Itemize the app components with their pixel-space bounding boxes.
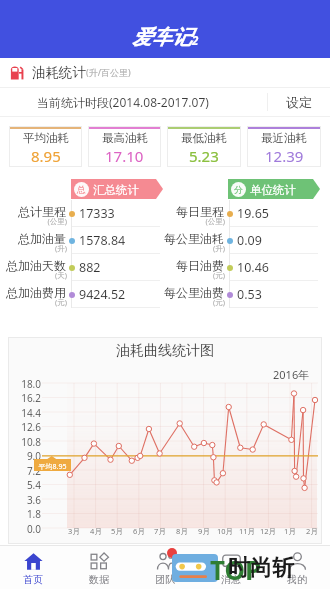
button[interactable]: 总 (71, 179, 163, 199)
button[interactable]: 平均油耗 (9, 126, 82, 167)
staticText: 3.6 (12, 493, 41, 507)
button[interactable]: 总加油费用 (0, 281, 165, 308)
staticText: 分 (234, 184, 243, 195)
button[interactable]: 设定 (268, 87, 330, 117)
staticText: 消息 (221, 573, 241, 586)
staticText: 16.2 (12, 391, 41, 405)
staticText: 总 (77, 184, 86, 195)
staticText: 团队 (155, 573, 175, 586)
staticText: (元) (125, 270, 225, 280)
button[interactable]: 每日油费 (165, 254, 330, 281)
staticText: 时尚斩 (228, 554, 294, 582)
staticText: 总计里程 (0, 204, 66, 219)
staticText: 12月 (257, 526, 279, 536)
staticText: 3月 (63, 526, 85, 536)
staticText: 设定 (286, 94, 312, 110)
staticText: 每日油费 (125, 258, 224, 273)
button[interactable]: 消息 (198, 545, 264, 589)
staticText: 17333 (79, 205, 115, 222)
staticText: (天) (0, 270, 67, 280)
staticText: 5.4 (12, 478, 41, 492)
staticText: 每公里油耗 (125, 231, 224, 246)
staticText: 9.0 (12, 449, 41, 463)
staticText: 最近油耗 (261, 131, 307, 145)
staticText: 8月 (171, 526, 193, 536)
staticText: 总加油费用 (0, 285, 66, 300)
staticText: 数据 (89, 573, 109, 586)
button[interactable]: 分 (228, 179, 320, 199)
staticText: 12.39 (265, 146, 304, 166)
staticText: 19.65 (237, 205, 269, 222)
staticText: 11月 (236, 526, 258, 536)
staticText: 我的 (287, 573, 307, 586)
button[interactable]: 每公里油费 (165, 281, 330, 308)
staticText: 总加油量 (0, 231, 66, 246)
staticText: 7月 (149, 526, 171, 536)
staticText: 2 (192, 33, 199, 49)
staticText: 最低油耗 (181, 131, 227, 145)
staticText: 2月 (301, 526, 323, 536)
button[interactable]: 最近油耗 (247, 126, 321, 167)
staticText: 14.4 (12, 406, 41, 420)
staticText: 10.46 (237, 259, 269, 276)
staticText: 882 (79, 259, 101, 276)
staticText: (升/百公里) (86, 66, 131, 78)
staticText: TOP (210, 552, 262, 587)
button[interactable]: 总计里程 (0, 200, 165, 227)
staticText: 9424.52 (79, 286, 126, 303)
button[interactable]: 最低油耗 (167, 126, 241, 167)
staticText: 每日里程 (125, 204, 224, 219)
button[interactable]: 团队 (132, 545, 198, 589)
button[interactable]: 总加油天数 (0, 254, 165, 281)
staticText: 每公里油费 (125, 285, 224, 300)
staticText: (升) (0, 243, 67, 253)
button[interactable]: 我的 (264, 545, 330, 589)
staticText: 单位统计 (250, 183, 296, 197)
staticText: 油耗统计 (32, 64, 86, 81)
staticText: 1月 (279, 526, 301, 536)
staticText: (公里) (0, 216, 67, 226)
staticText: (元) (0, 297, 67, 307)
staticText: 总加油天数 (0, 258, 66, 273)
staticText: 最高油耗 (102, 131, 148, 145)
staticText: 10月 (214, 526, 236, 536)
staticText: 爱车记 (132, 25, 192, 50)
staticText: 汇总统计 (93, 183, 139, 197)
staticText: 1578.84 (79, 232, 126, 249)
staticText: 6月 (128, 526, 150, 536)
staticText: 5.23 (189, 146, 219, 166)
staticText: 0.0 (12, 522, 41, 536)
staticText: 10.8 (12, 435, 41, 449)
button[interactable]: 数据 (66, 545, 132, 589)
staticText: (升) (125, 243, 225, 253)
other: 油耗 (10, 65, 25, 80)
staticText: 平均8.95 (34, 462, 71, 472)
button[interactable]: 总加油量 (0, 227, 165, 254)
staticText: (元) (125, 297, 225, 307)
button[interactable]: 每日里程 (165, 200, 330, 227)
staticText: 0.53 (237, 286, 262, 303)
staticText: 5月 (106, 526, 128, 536)
button[interactable]: 每公里油耗 (165, 227, 330, 254)
staticText: 7.2 (12, 464, 41, 478)
staticText: 1.8 (12, 507, 41, 521)
staticText: 0.09 (237, 232, 262, 249)
staticText: 8.95 (31, 146, 61, 166)
staticText: 首页 (23, 573, 43, 586)
staticText: 当前统计时段(2014.08-2017.07) (37, 94, 209, 110)
staticText: 4月 (85, 526, 107, 536)
staticText: 平均油耗 (23, 131, 69, 145)
button[interactable]: 首页 (0, 545, 66, 589)
staticText: 17.10 (105, 146, 144, 166)
staticText: 9月 (193, 526, 215, 536)
button[interactable]: 最高油耗 (88, 126, 161, 167)
staticText: 油耗曲线统计图 (8, 342, 322, 360)
staticText: (公里) (125, 216, 225, 226)
staticText: 18.0 (12, 377, 41, 391)
staticText: 12.6 (12, 420, 41, 434)
staticText: 2016年 (273, 367, 310, 382)
